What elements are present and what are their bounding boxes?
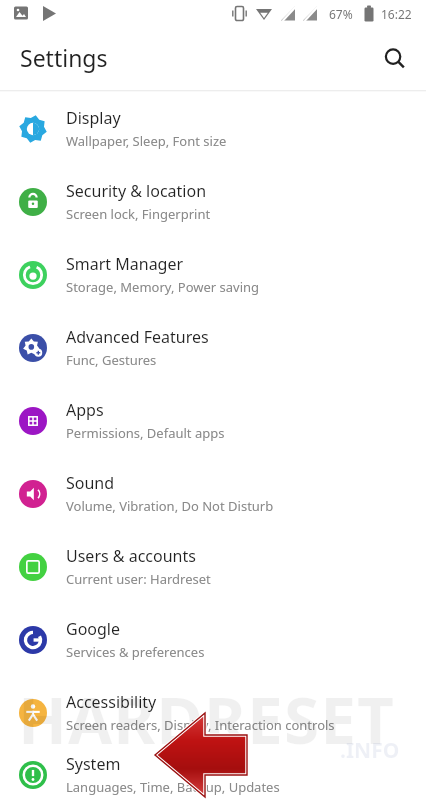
staticText: Smart Manager — [66, 253, 184, 275]
staticText: Volume, Vibration, Do Not Disturb — [66, 497, 274, 515]
button[interactable]: Security & location — [0, 165, 426, 238]
staticText: Settings — [20, 42, 108, 73]
staticText: Security & location — [66, 180, 207, 202]
staticText: Display — [66, 107, 121, 129]
staticText: Wallpaper, Sleep, Font size — [66, 132, 227, 150]
button[interactable]: Sound — [0, 457, 426, 530]
staticText: Users & accounts — [66, 545, 196, 567]
staticText: Func, Gestures — [66, 351, 157, 369]
staticText: Sound — [66, 472, 115, 494]
button[interactable]: Search — [371, 35, 419, 83]
staticText: Screen readers, Display, Interaction con… — [66, 716, 335, 734]
button[interactable]: Advanced Features — [0, 311, 426, 384]
staticText: .INFO — [340, 736, 400, 765]
button[interactable]: Apps — [0, 384, 426, 457]
button[interactable]: Users & accounts — [0, 530, 426, 603]
staticText: Storage, Memory, Power saving — [66, 278, 260, 296]
button[interactable]: Smart Manager — [0, 238, 426, 311]
button[interactable]: Google — [0, 603, 426, 676]
button[interactable]: System — [0, 749, 426, 800]
staticText: 67% — [329, 6, 353, 22]
staticText: Google — [66, 618, 121, 640]
staticText: Apps — [66, 399, 104, 421]
button[interactable]: Display — [0, 92, 426, 165]
staticText: Current user: Hardreset — [66, 570, 211, 588]
staticText: HARDRESET — [18, 676, 395, 763]
staticText: System — [66, 753, 121, 775]
staticText: Screen lock, Fingerprint — [66, 205, 211, 223]
staticText: Services & preferences — [66, 643, 205, 661]
staticText: Advanced Features — [66, 326, 209, 348]
staticText: 16:22 — [381, 6, 412, 22]
button[interactable]: Accessibility — [0, 676, 426, 749]
staticText: Languages, Time, Backup, Updates — [66, 778, 280, 796]
staticText: Accessibility — [66, 691, 157, 713]
staticText: Permissions, Default apps — [66, 424, 225, 442]
